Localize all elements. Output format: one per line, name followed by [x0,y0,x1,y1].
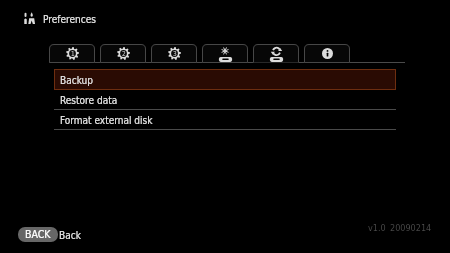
staticText: 20090214 [390,223,432,233]
staticText: BACK [25,228,51,240]
staticText: Format external disk [60,115,153,127]
staticText: 2 [122,50,126,58]
staticText: Preferences [43,14,96,26]
button[interactable]: Format disk [202,44,248,65]
button[interactable]: Format external disk [54,110,396,130]
button[interactable]: Backup [54,69,396,90]
button[interactable]: Backup disk [253,44,299,65]
button[interactable]: Settings 1 [49,44,95,65]
button[interactable]: Settings 3 [151,44,197,65]
staticText: Back [59,230,81,242]
button[interactable]: BACK [18,227,81,242]
staticText: 3 [173,50,177,58]
button[interactable]: Preferences [23,8,96,26]
button[interactable]: Restore data [54,90,396,110]
staticText: Backup [60,75,93,87]
button[interactable]: Information [304,44,350,65]
staticText: Restore data [60,95,118,107]
button[interactable]: Settings 2 [100,44,146,65]
staticText: 1 [71,50,75,58]
staticText: v1.0 [368,223,386,233]
